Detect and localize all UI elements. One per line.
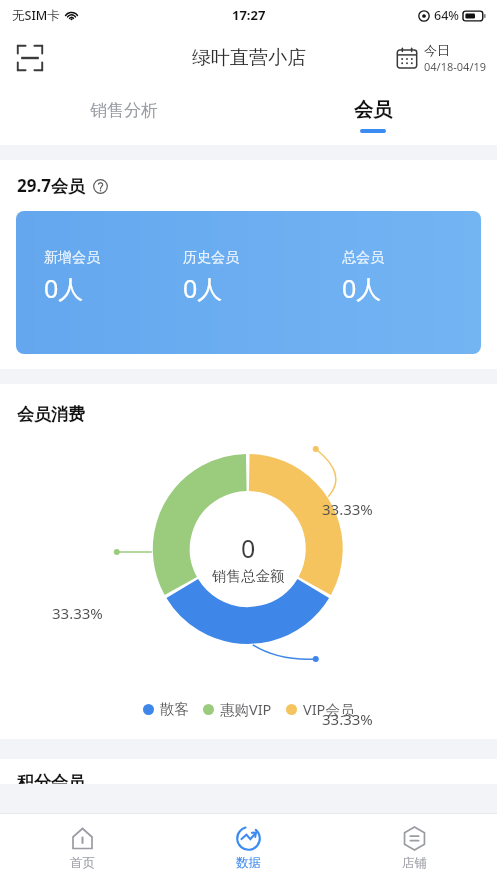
staticText: 新增会员 [44,249,100,267]
button[interactable]: 惠购VIP [203,699,272,719]
staticText: 总会员 [342,249,384,267]
staticText: 会员消费 [17,404,85,425]
staticText: 销售分析 [90,100,158,121]
button[interactable]: Help [90,176,110,196]
staticText: 散客 [160,700,189,718]
staticText: VIP会员 [303,699,355,719]
staticText: 数据 [236,855,261,871]
staticText: 17:27 [232,6,266,24]
staticText: 33.33% [322,499,373,519]
staticText: 0人 [183,271,223,305]
staticText: 惠购VIP [220,699,272,719]
staticText: 29.7会员 [17,174,85,197]
staticText: 今日 [424,42,450,58]
staticText: 历史会员 [183,249,239,267]
staticText: 会员 [354,98,392,122]
button[interactable]: VIP会员 [286,699,355,719]
staticText: 33.33% [322,709,373,729]
button[interactable]: Data [165,814,331,883]
staticText: 04/18-04/19 [424,59,487,74]
button[interactable]: Home [0,814,165,883]
button[interactable]: 销售分析 [0,85,248,145]
staticText: 64% [434,7,459,24]
staticText: 店铺 [402,855,427,871]
staticText: 绿叶直营小店 [192,46,306,70]
staticText: 首页 [70,855,95,871]
staticText: 0 [241,531,256,565]
staticText: 销售总金额 [212,567,285,585]
button[interactable]: 今日 [396,42,487,74]
button[interactable]: 散客 [143,700,189,718]
staticText: 积分会员 [17,772,85,784]
button[interactable]: Scan [12,40,48,76]
staticText: 0人 [342,271,382,305]
button[interactable]: 新增会员 [16,211,481,354]
staticText: 无SIM卡 [12,7,60,24]
button[interactable]: 会员 [248,85,497,145]
staticText: 33.33% [52,603,103,623]
staticText: 0人 [44,271,84,305]
button[interactable]: Store [331,814,497,883]
